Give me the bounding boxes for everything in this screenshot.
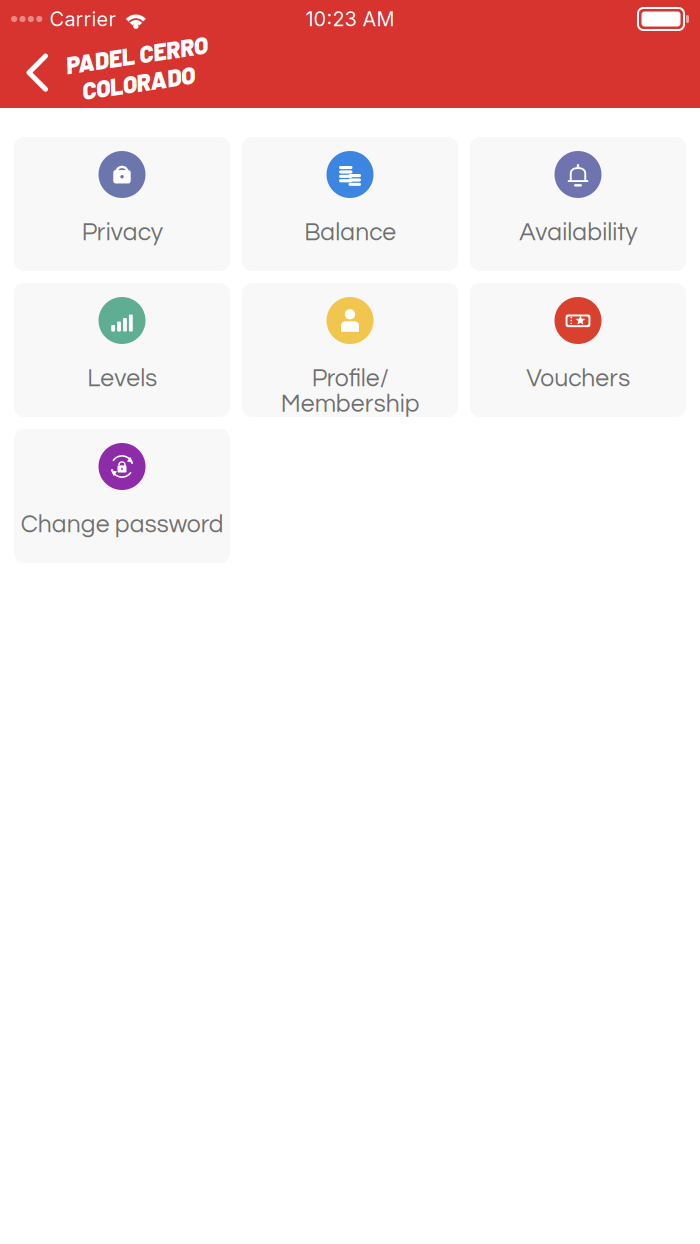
button[interactable]: Availability (470, 137, 686, 271)
staticText: Change password (20, 512, 223, 537)
staticText: Balance (304, 220, 396, 245)
button[interactable]: Levels (14, 283, 230, 417)
staticText: Carrier (49, 7, 115, 31)
button[interactable]: Change password (14, 429, 230, 563)
button[interactable]: Back (0, 39, 72, 107)
staticText: COLORADO (79, 68, 193, 97)
button[interactable]: Profile/ Membership (242, 283, 458, 417)
staticText: Availability (519, 220, 637, 245)
staticText: Levels (87, 366, 157, 391)
staticText: PADEL CERRO (67, 40, 210, 69)
button[interactable]: Privacy (14, 137, 230, 271)
staticText: Profile/ Membership (280, 366, 419, 417)
staticText: Vouchers (526, 366, 630, 391)
button[interactable]: Balance (242, 137, 458, 271)
button[interactable]: Vouchers (470, 283, 686, 417)
staticText: 10:23 AM (305, 7, 394, 31)
staticText: Privacy (81, 220, 162, 245)
